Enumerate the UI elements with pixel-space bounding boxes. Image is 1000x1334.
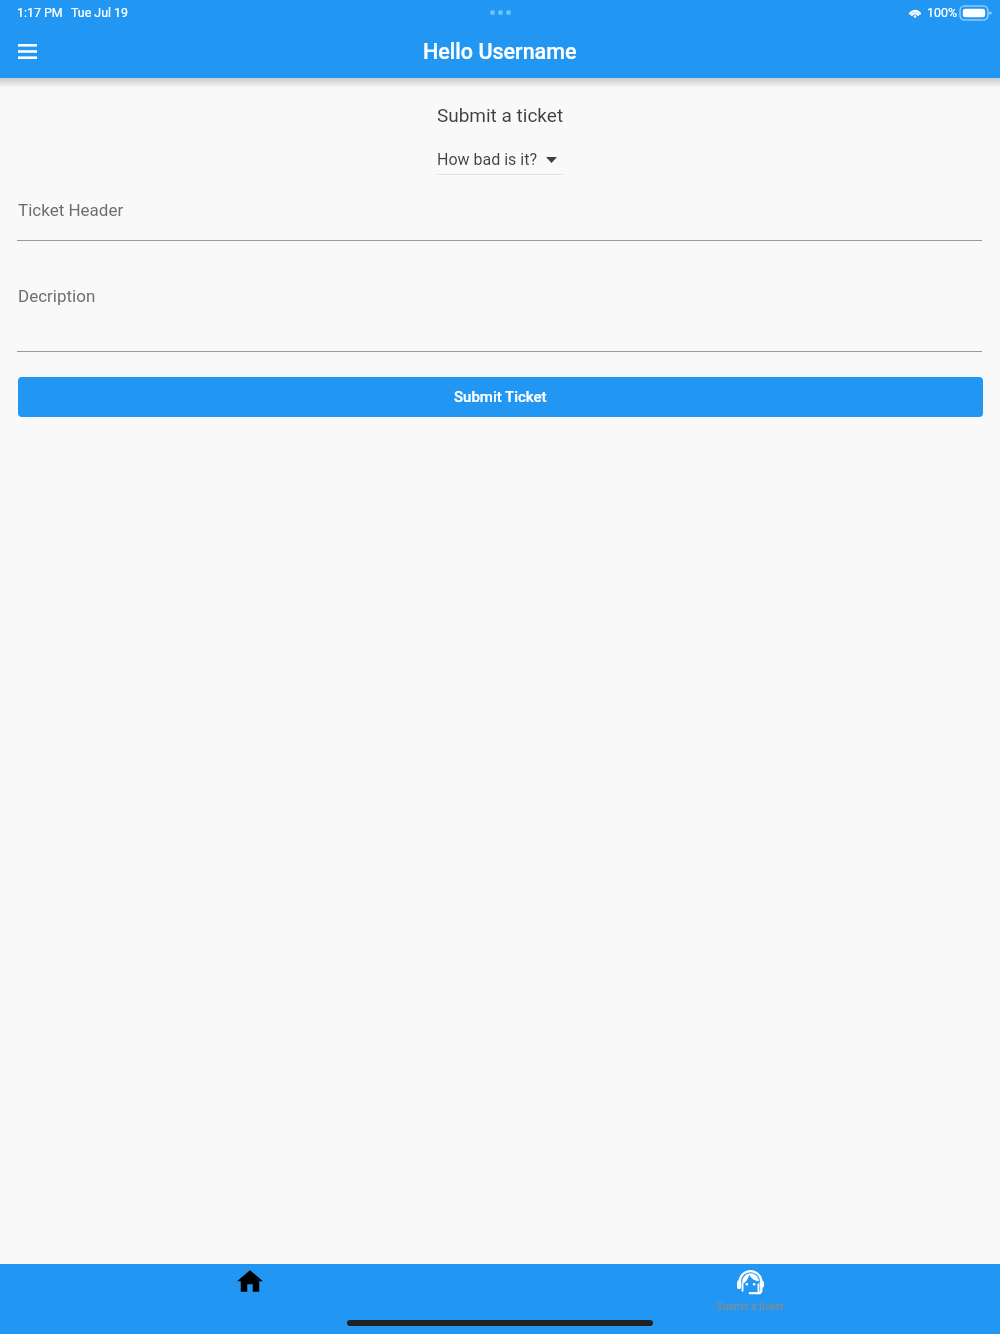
button[interactable]: How bad is it? — [437, 150, 563, 169]
button[interactable]: Open navigation menu — [8, 32, 46, 70]
button[interactable]: Home — [0, 1264, 500, 1334]
button[interactable]: Submit Ticket — [18, 377, 983, 417]
staticText: Submit a ticket — [717, 1301, 784, 1313]
staticText: How bad is it? — [437, 150, 538, 169]
staticText: Ticket Header — [18, 200, 124, 220]
button[interactable]: Submit a ticket — [500, 1264, 1000, 1334]
staticText: 100% — [927, 5, 957, 20]
staticText: Submit Ticket — [454, 388, 547, 406]
staticText: Tue Jul 19 — [71, 5, 128, 20]
staticText: 1:17 PM — [17, 5, 63, 20]
staticText: Hello Username — [423, 39, 577, 64]
staticText: Submit a ticket — [0, 104, 1000, 126]
staticText: Decription — [18, 286, 96, 306]
